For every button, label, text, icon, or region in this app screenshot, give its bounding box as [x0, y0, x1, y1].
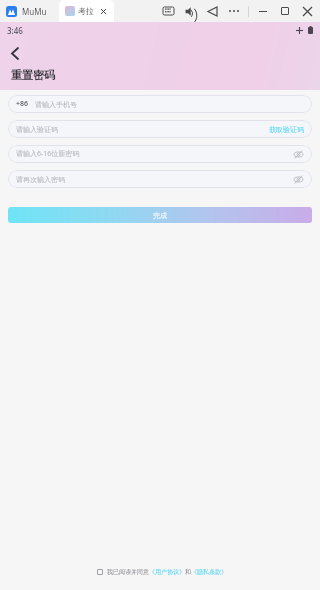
staticText: 《隐私条款》	[191, 568, 227, 576]
button[interactable]: 请再次输入密码	[8, 170, 312, 188]
staticText: 重置密码	[11, 68, 55, 82]
staticText: 和	[185, 568, 191, 576]
button[interactable]: Back	[4, 42, 26, 64]
staticText: 《用户协议》	[149, 568, 185, 576]
button[interactable]: More options	[223, 0, 245, 22]
staticText: 请输入6-16位新密码	[16, 149, 80, 159]
button[interactable]: 《隐私条款》	[191, 568, 227, 576]
staticText: 请再次输入密码	[16, 175, 65, 184]
button[interactable]: 《用户协议》	[149, 568, 185, 576]
button[interactable]: Close tab	[98, 6, 108, 16]
staticText: 获取验证码	[269, 125, 304, 134]
button[interactable]: Close window	[296, 0, 318, 22]
button[interactable]: 获取验证码	[269, 125, 304, 134]
button[interactable]: Back	[201, 0, 223, 22]
button[interactable]: Keyboard	[157, 0, 179, 22]
button[interactable]: Volume	[179, 0, 201, 22]
button[interactable]: Agree to terms	[94, 566, 106, 578]
button[interactable]: Minimize	[252, 0, 274, 22]
staticText: 请输入手机号	[35, 100, 77, 109]
staticText: 考拉	[78, 6, 94, 16]
button[interactable]: 请输入验证码	[8, 120, 312, 138]
button[interactable]: 请输入6-16位新密码	[8, 145, 312, 163]
button[interactable]: Toggle password visibility	[292, 148, 304, 160]
button[interactable]: 完成	[8, 207, 312, 223]
staticText: MuMu	[22, 6, 47, 17]
button[interactable]: Toggle password visibility	[292, 173, 304, 185]
button[interactable]: 考拉	[65, 0, 108, 22]
staticText: 3:46	[7, 25, 23, 36]
button[interactable]: +86	[8, 95, 312, 113]
staticText: 我已阅读并同意	[107, 568, 149, 576]
staticText: 请输入验证码	[16, 125, 58, 134]
staticText: +86	[16, 99, 29, 109]
staticText: 完成	[153, 211, 167, 220]
button[interactable]: Maximize	[274, 0, 296, 22]
